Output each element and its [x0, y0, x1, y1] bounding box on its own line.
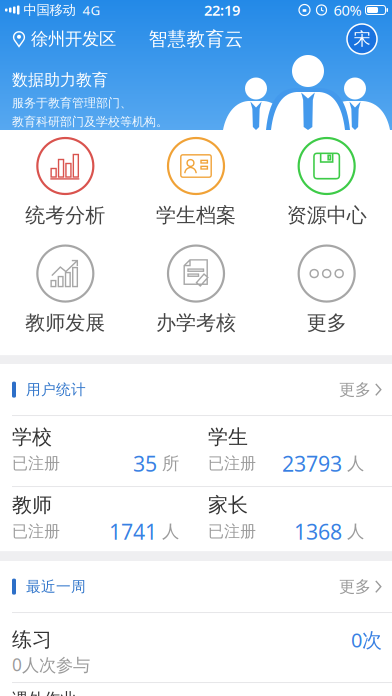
staticText: 学生 [208, 425, 248, 449]
button[interactable]: 更多 [339, 577, 392, 596]
staticText: 已注册 [208, 522, 256, 541]
staticText: 数据助力教育 [12, 70, 108, 90]
staticText: 人 [342, 453, 364, 474]
staticText: 办学考核 [156, 311, 236, 335]
button[interactable]: 办学考核 [131, 246, 261, 335]
staticText: 人 [342, 521, 364, 542]
staticText: 课外作业 [12, 689, 76, 696]
staticText: 用户统计 [26, 381, 86, 399]
staticText: 所 [157, 453, 179, 474]
staticText: 1741 [109, 517, 157, 545]
button[interactable]: 徐州开发区 [0, 28, 116, 50]
staticText: 更多 [307, 311, 347, 335]
staticText: 人 [157, 521, 179, 542]
staticText: 已注册 [208, 454, 256, 473]
staticText: 60% [333, 0, 361, 20]
staticText: 已注册 [12, 522, 60, 541]
staticText: 已注册 [12, 454, 60, 473]
staticText: 统考分析 [25, 203, 105, 228]
staticText: 教育科研部门及学校等机构。 [12, 114, 168, 129]
staticText: 宋 [353, 28, 370, 50]
staticText: 资源中心 [287, 203, 367, 228]
button[interactable]: 教师发展 [0, 246, 131, 335]
button[interactable]: 资源中心 [261, 138, 392, 228]
staticText: 练习 [12, 627, 52, 652]
staticText: 学生档案 [156, 203, 236, 228]
button[interactable]: 练习 [0, 613, 392, 682]
staticText: 1368 [294, 517, 342, 545]
button[interactable]: 更多 [261, 246, 392, 335]
staticText: 23793 [282, 449, 342, 477]
staticText: 中国移动 [23, 2, 75, 18]
staticText: 教师 [12, 493, 52, 517]
button[interactable]: 统考分析 [0, 138, 131, 228]
button[interactable]: 学生档案 [131, 138, 261, 228]
staticText: 徐州开发区 [31, 28, 116, 50]
button[interactable]: 课外作业 [0, 683, 392, 696]
staticText: 学校 [12, 425, 52, 449]
staticText: 35 [133, 449, 157, 477]
staticText: 家长 [208, 493, 248, 517]
staticText: 0次 [351, 626, 382, 653]
button[interactable]: 个人中心 [347, 24, 392, 54]
staticText: 22:19 [204, 0, 240, 20]
staticText: 4G [82, 1, 100, 19]
staticText: 更多 [339, 380, 371, 399]
staticText: 智慧教育云 [148, 27, 243, 50]
staticText: 服务于教育管理部门、 [12, 96, 132, 110]
staticText: 最近一周 [26, 578, 86, 596]
staticText: 教师发展 [25, 311, 105, 335]
button[interactable]: 更多 [339, 380, 392, 399]
staticText: 0人次参与 [12, 653, 90, 676]
staticText: 更多 [339, 577, 371, 596]
